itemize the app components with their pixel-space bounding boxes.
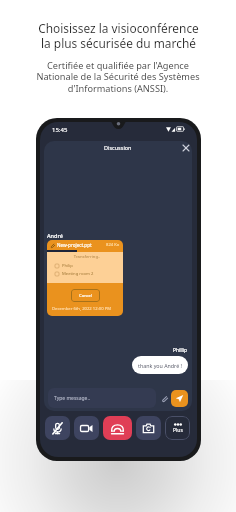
button[interactable]: Take photo [136,416,161,440]
staticText: André [47,232,63,239]
button[interactable]: Type message.. [48,388,156,408]
staticText: 15:45 [52,126,68,134]
staticText: Cancel [79,293,93,299]
button[interactable]: Plus [165,416,190,440]
staticText: Philip [62,263,73,269]
staticText: Plus [173,427,183,434]
button[interactable]: Video camera [74,416,99,440]
staticText: December 6th, 2022 12:00 PM [52,306,111,312]
staticText: Type message.. [54,395,91,402]
staticText: Certifiée et qualifiée par l'Agence Nati… [36,59,200,95]
staticText: Choisissez la visioconférence la plus sé… [38,20,199,51]
button[interactable]: Cancel [71,289,100,302]
button[interactable]: Attach file [159,393,169,403]
button[interactable]: Send message [171,390,188,407]
button[interactable]: Close [181,143,190,152]
staticText: Discussion [104,144,132,151]
button[interactable]: thank you André ! [132,356,188,374]
button[interactable]: Hang up [103,416,132,440]
staticText: 824 Ko [106,242,120,248]
staticText: Transferring.. [49,254,123,260]
staticText: thank you André ! [138,362,182,369]
staticText: New-project.ppt [57,242,92,248]
button[interactable]: Mute microphone [45,416,70,440]
staticText: Meeting room 2 [62,271,94,277]
staticText: Phillip [173,347,188,354]
